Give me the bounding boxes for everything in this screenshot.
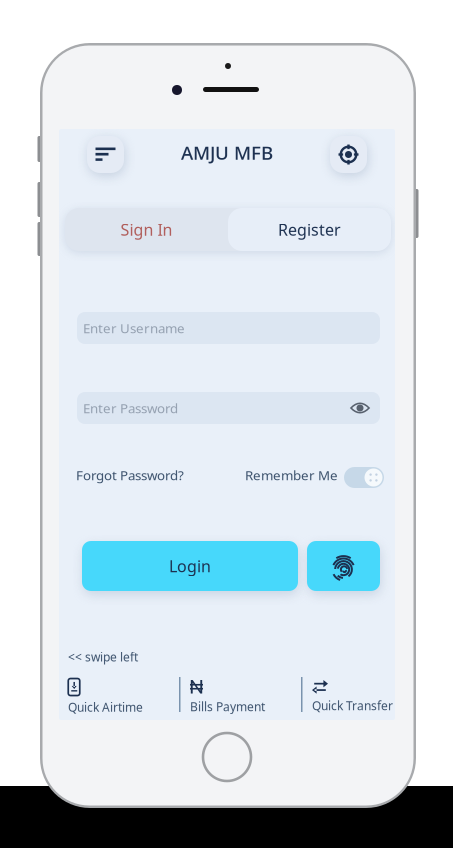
button[interactable]: Show password bbox=[350, 402, 370, 414]
button[interactable]: Menu bbox=[87, 136, 124, 173]
button[interactable]: Bills Payment bbox=[190, 677, 301, 716]
button[interactable]: Register bbox=[228, 208, 391, 251]
button[interactable]: Forgot Password? bbox=[76, 466, 184, 484]
staticText: << swipe left bbox=[68, 649, 138, 665]
button[interactable]: Sign in with fingerprint bbox=[307, 541, 380, 591]
staticText: Enter Username bbox=[83, 319, 185, 337]
staticText: Enter Password bbox=[83, 399, 178, 417]
staticText: Quick Airtime bbox=[68, 699, 143, 715]
staticText: Remember Me bbox=[245, 466, 338, 484]
staticText: Quick Transfer bbox=[312, 697, 393, 713]
button[interactable]: Quick Airtime bbox=[68, 677, 179, 716]
staticText: AMJU MFB bbox=[181, 140, 273, 165]
staticText: Forgot Password? bbox=[76, 466, 184, 484]
staticText: Login bbox=[169, 555, 211, 577]
staticText: Bills Payment bbox=[190, 698, 265, 714]
button[interactable]: Find us bbox=[330, 136, 367, 173]
staticText: Register bbox=[278, 219, 341, 240]
button[interactable]: Quick Transfer bbox=[312, 677, 395, 716]
staticText: Sign In bbox=[120, 219, 172, 240]
button[interactable]: Sign In bbox=[65, 208, 228, 251]
button[interactable]: Login bbox=[82, 541, 298, 591]
button[interactable]: Remember Me bbox=[344, 467, 384, 488]
